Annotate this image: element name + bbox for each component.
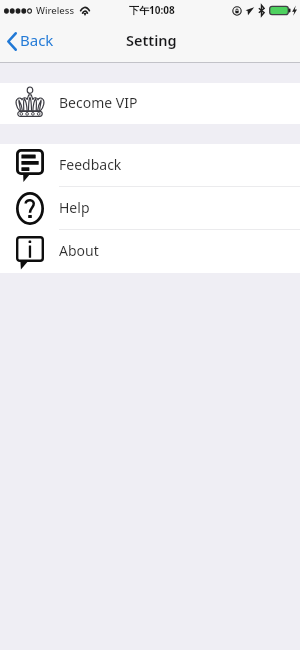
button[interactable]: Back bbox=[0, 26, 64, 58]
button[interactable]: Feedback bbox=[0, 144, 300, 186]
button[interactable]: Become VIP bbox=[0, 83, 300, 124]
staticText: Wireless bbox=[36, 4, 75, 17]
staticText: Become VIP bbox=[59, 93, 138, 112]
staticText: Feedback bbox=[59, 155, 122, 174]
staticText: Setting bbox=[126, 30, 177, 50]
button[interactable]: About bbox=[0, 230, 300, 273]
staticText: About bbox=[59, 241, 99, 260]
staticText: 下午10:08 bbox=[129, 3, 175, 17]
staticText: Back bbox=[20, 30, 54, 50]
staticText: Help bbox=[59, 198, 90, 217]
button[interactable]: Help bbox=[0, 187, 300, 229]
